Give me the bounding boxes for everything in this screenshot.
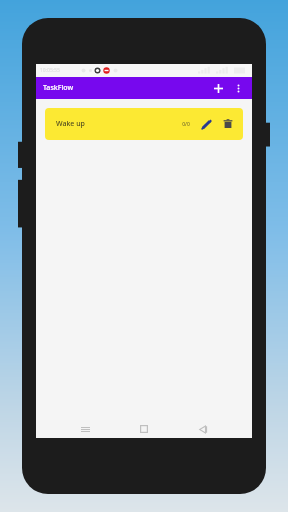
button[interactable]: Add task: [208, 78, 228, 98]
button[interactable]: Recent apps: [75, 420, 95, 438]
button[interactable]: Wake up: [45, 108, 243, 140]
button[interactable]: Edit task: [197, 115, 215, 133]
staticText: 10:05:55: [40, 67, 60, 74]
staticText: TaskFlow: [43, 83, 74, 93]
button[interactable]: Back: [193, 420, 213, 438]
button[interactable]: Home: [134, 420, 154, 438]
staticText: 0/0: [182, 121, 190, 128]
button[interactable]: More options: [228, 78, 248, 98]
staticText: Wake up: [56, 119, 85, 129]
button[interactable]: Delete task: [219, 115, 237, 133]
